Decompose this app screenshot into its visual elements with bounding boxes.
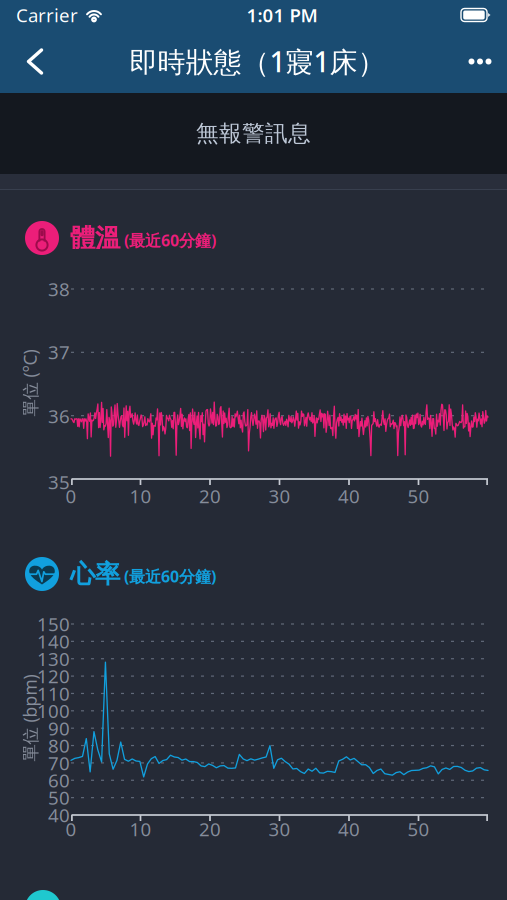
staticText: 50 [407,484,429,508]
staticText: 50 [48,785,70,810]
staticText: Carrier [16,3,78,27]
staticText: 心率 [70,558,120,589]
staticText: 60 [48,768,70,793]
staticText: 10 [129,484,151,508]
button[interactable]: Back [12,30,58,93]
staticText: 單位 (bpm) [0,706,73,729]
staticText: 150 [37,612,70,636]
staticText: 130 [37,646,70,671]
staticText: 40 [48,803,70,827]
staticText: 1:01 PM [246,3,317,27]
staticText: 30 [268,817,290,841]
staticText: 120 [37,664,70,688]
staticText: 10 [129,817,151,841]
staticText: 20 [199,817,221,841]
button[interactable]: More options [457,30,503,93]
staticText: 單位 (°C) [0,371,63,394]
staticText: 37 [48,340,70,364]
staticText: 70 [48,750,70,775]
staticText: 40 [338,484,360,508]
staticText: 0 [65,817,76,841]
staticText: 50 [407,817,429,841]
staticText: 體溫 [70,222,120,253]
staticText: 38 [48,277,70,301]
staticText: 20 [199,484,221,508]
staticText: 即時狀態（1寢1床） [129,43,385,80]
staticText: 30 [268,484,290,508]
staticText: 80 [48,733,70,758]
staticText: 36 [48,404,70,428]
staticText: 100 [37,698,70,723]
staticText: 0 [65,484,76,508]
staticText: 140 [37,629,70,654]
staticText: 40 [338,817,360,841]
staticText: 90 [48,716,70,741]
staticText: (最近60分鐘) [124,566,216,587]
staticText: 110 [37,681,70,706]
staticText: 35 [48,470,70,494]
staticText: (最近60分鐘) [124,230,216,251]
staticText: 無報警訊息 [196,120,311,147]
